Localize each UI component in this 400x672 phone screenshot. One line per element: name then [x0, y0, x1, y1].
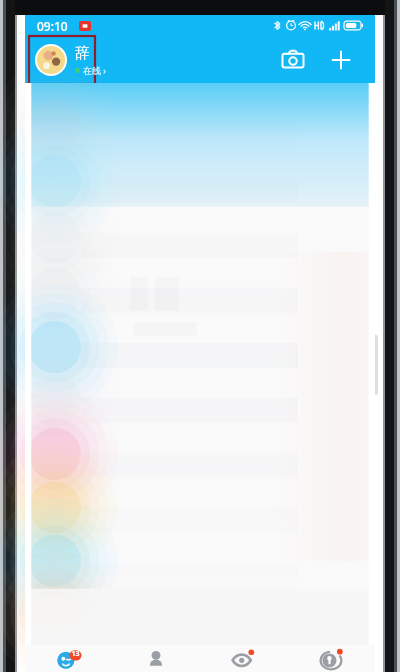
staticText: 13: [70, 649, 81, 659]
button[interactable]: Messages: [25, 645, 112, 672]
button[interactable]: Camera: [273, 40, 313, 80]
staticText: 在线 ›: [83, 64, 107, 76]
button[interactable]: Discover: [199, 645, 287, 672]
button[interactable]: Add: [321, 40, 361, 80]
staticText: 09:10: [37, 18, 68, 34]
button[interactable]: Profile: [287, 645, 375, 672]
staticText: 辞: [75, 44, 90, 63]
button[interactable]: 辞: [31, 42, 111, 78]
button[interactable]: Contacts: [112, 645, 199, 672]
